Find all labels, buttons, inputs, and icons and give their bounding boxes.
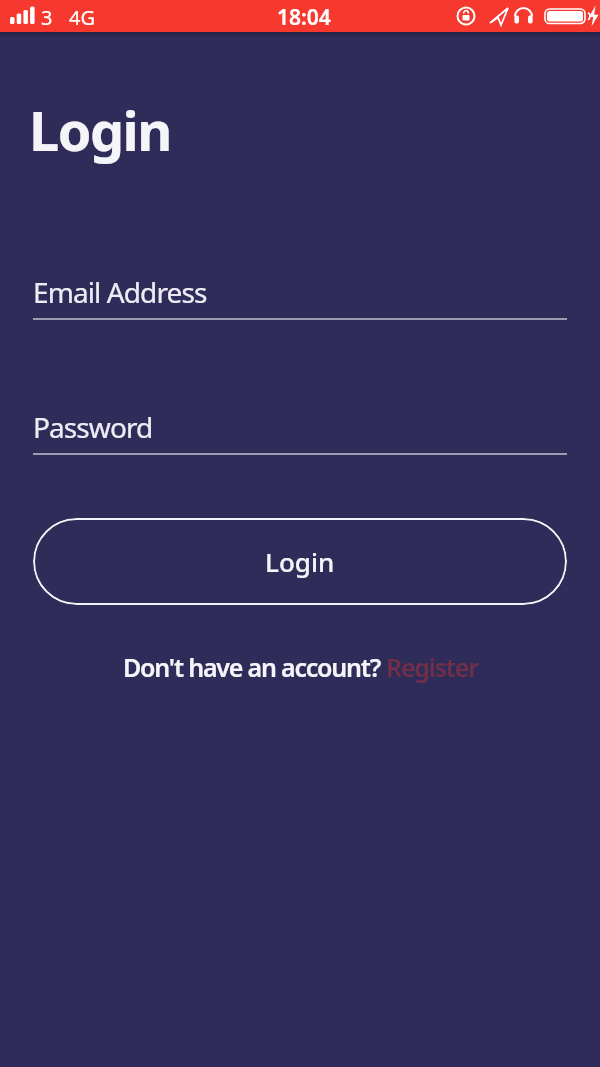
staticText: 3 — [41, 4, 53, 31]
staticText: Don't have an account? — [123, 650, 386, 684]
staticText: Login — [265, 544, 335, 579]
button[interactable]: Login — [33, 518, 567, 605]
staticText: 4G — [69, 4, 95, 31]
staticText: Password — [33, 408, 153, 446]
staticText: Email Address — [33, 273, 207, 311]
button[interactable]: Password — [33, 397, 567, 455]
button[interactable]: Register — [386, 650, 478, 684]
staticText: 18:04 — [277, 3, 331, 32]
staticText: Login — [29, 93, 171, 167]
button[interactable]: Email Address — [33, 262, 567, 320]
